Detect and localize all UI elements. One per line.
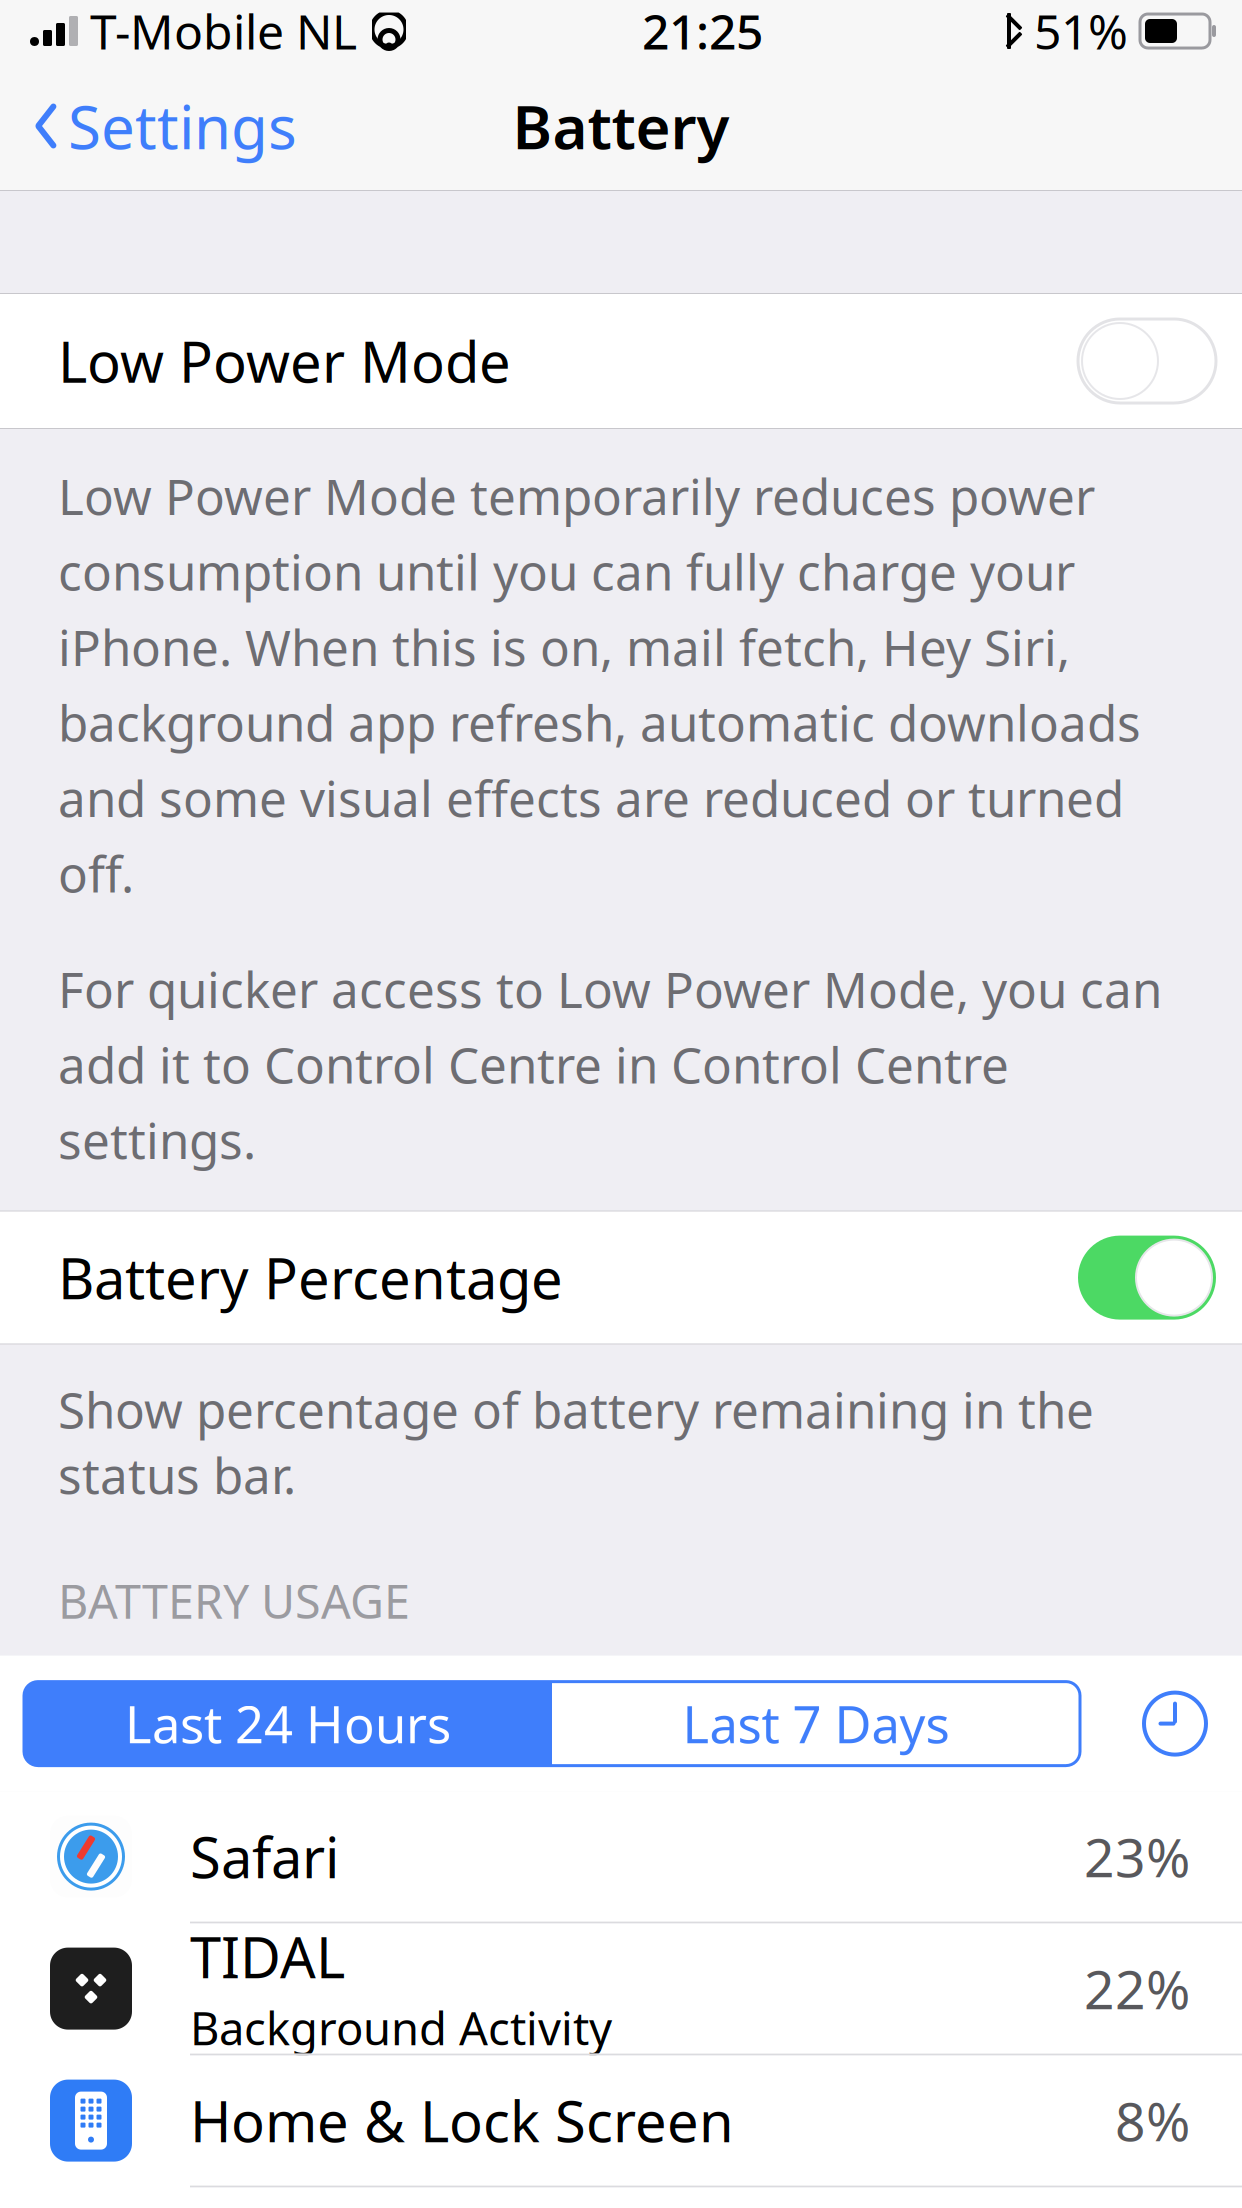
button[interactable]: Safari — [0, 1792, 1242, 1922]
staticText: T-Mobile NL — [90, 0, 357, 63]
button[interactable]: Settings — [0, 66, 297, 186]
staticText: Battery — [512, 86, 729, 166]
button[interactable]: TIDAL — [0, 1924, 1242, 2054]
button[interactable]: Battery Percentage — [0, 1212, 1242, 1344]
button[interactable]: Low Power Mode — [0, 294, 1242, 428]
staticText: Last 24 Hours — [125, 1690, 451, 1757]
staticText: Battery Percentage — [58, 1240, 563, 1315]
button[interactable]: Show battery usage by time — [1130, 1682, 1220, 1766]
staticText: For quicker access to Low Power Mode, yo… — [58, 956, 1162, 1173]
staticText: 22% — [1084, 1953, 1190, 2024]
button[interactable]: Last 24 Hours — [24, 1682, 552, 1766]
staticText: Low Power Mode temporarily reduces power… — [58, 463, 1141, 906]
staticText: 23% — [1084, 1821, 1190, 1892]
staticText: Settings — [68, 86, 297, 166]
button[interactable]: Last 7 Days — [552, 1682, 1080, 1766]
staticText: Background Activity — [190, 1998, 612, 2058]
button[interactable]: Home & Lock Screen — [0, 2056, 1242, 2186]
staticText: Last 7 Days — [682, 1690, 949, 1757]
staticText: Safari — [190, 1819, 339, 1894]
staticText: Show percentage of battery remaining in … — [58, 1377, 1094, 1508]
staticText: Low Power Mode — [58, 324, 511, 398]
staticText: TIDAL — [190, 1919, 345, 1994]
staticText: 8% — [1115, 2085, 1190, 2156]
staticText: BATTERY USAGE — [58, 1570, 410, 1632]
staticText: Home & Lock Screen — [190, 2083, 734, 2158]
staticText: 51% — [1034, 0, 1128, 63]
staticText: 21:25 — [642, 0, 763, 63]
